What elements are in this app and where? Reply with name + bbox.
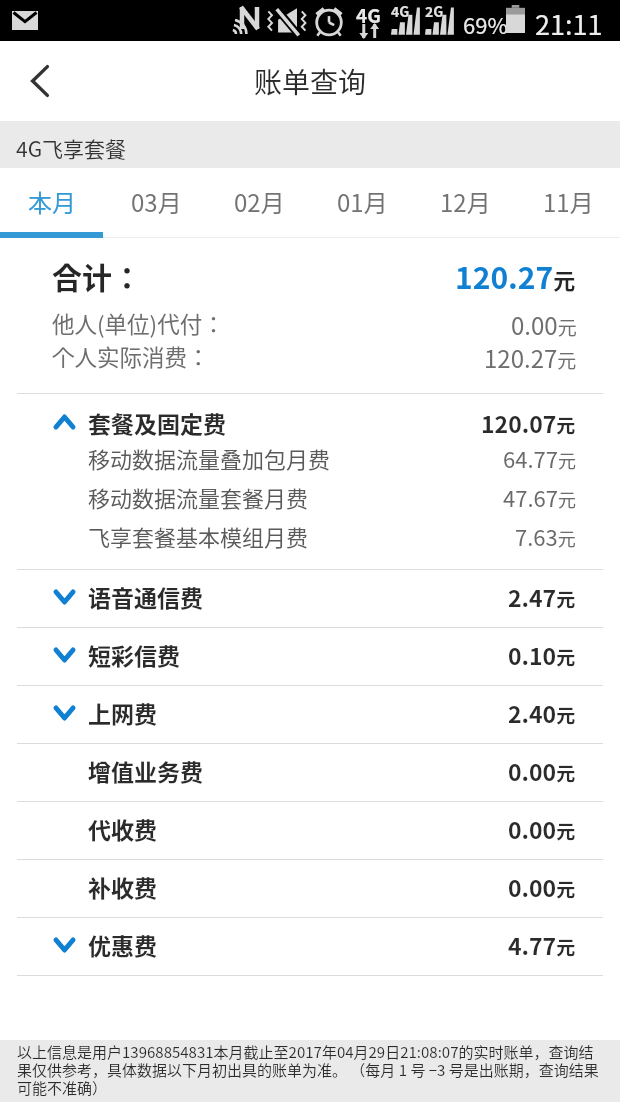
staticText: 短彩信费 xyxy=(88,638,180,671)
button[interactable]: 上网费 xyxy=(17,686,576,743)
staticText: 64.77元 xyxy=(503,442,576,474)
staticText: 飞享套餐基本模组月费 xyxy=(88,520,309,552)
button[interactable]: 语音通信费 xyxy=(17,570,576,627)
staticText: 合计： xyxy=(52,254,142,297)
staticText: 11月 xyxy=(543,184,594,219)
staticText: 0.10元 xyxy=(508,638,576,671)
button[interactable]: 短彩信费 xyxy=(17,628,576,685)
button[interactable]: 代收费 xyxy=(17,802,576,859)
staticText: 7.63元 xyxy=(515,520,576,552)
staticText: 上网费 xyxy=(88,696,157,729)
button[interactable]: 优惠费 xyxy=(17,918,576,975)
staticText: 他人(单位)代付： xyxy=(52,307,225,340)
staticText: 账单查询 xyxy=(254,61,367,102)
button[interactable]: 01月 xyxy=(311,168,414,238)
staticText: 2.40元 xyxy=(508,696,576,729)
staticText: 0.00元 xyxy=(511,307,577,340)
staticText: 2G xyxy=(425,1,444,21)
staticText: 47.67元 xyxy=(503,481,576,513)
button[interactable]: 套餐及固定费 xyxy=(17,394,576,440)
staticText: 4.77元 xyxy=(508,928,576,961)
button[interactable]: 03月 xyxy=(104,168,208,238)
staticText: 本月 xyxy=(28,184,76,219)
staticText: 优惠费 xyxy=(88,928,157,961)
staticText: 12月 xyxy=(440,184,491,219)
staticText: 0.00元 xyxy=(508,754,576,787)
staticText: 增值业务费 xyxy=(88,754,203,787)
staticText: 0.00元 xyxy=(508,870,576,903)
button[interactable]: Back xyxy=(0,41,78,121)
staticText: 移动数据流量叠加包月费 xyxy=(88,442,331,474)
staticText: 4G飞享套餐 xyxy=(16,133,127,163)
button[interactable]: 补收费 xyxy=(17,860,576,917)
staticText: 4G xyxy=(391,1,410,21)
staticText: 套餐及固定费 xyxy=(88,406,226,439)
button[interactable]: 02月 xyxy=(208,168,311,238)
button[interactable]: 12月 xyxy=(414,168,517,238)
staticText: 120.27元 xyxy=(455,254,576,297)
staticText: 21:11 xyxy=(535,4,603,43)
staticText: 120.07元 xyxy=(481,406,576,439)
staticText: 03月 xyxy=(131,184,182,219)
staticText: 补收费 xyxy=(88,870,157,903)
staticText: 0.00元 xyxy=(508,812,576,845)
staticText: 2.47元 xyxy=(508,580,576,613)
button[interactable]: 11月 xyxy=(517,168,620,238)
staticText: 个人实际消费： xyxy=(52,340,210,373)
staticText: 代收费 xyxy=(88,812,157,845)
staticText: 120.27元 xyxy=(484,340,577,373)
staticText: 以上信息是用户13968854831本月截止至2017年04月29日21:08:… xyxy=(17,1041,605,1099)
staticText: 69% xyxy=(463,8,508,40)
button[interactable]: 本月 xyxy=(0,168,104,238)
staticText: 语音通信费 xyxy=(88,580,203,613)
staticText: 4G xyxy=(356,1,381,29)
staticText: 移动数据流量套餐月费 xyxy=(88,481,309,513)
staticText: 01月 xyxy=(337,184,388,219)
button[interactable]: 增值业务费 xyxy=(17,744,576,801)
staticText: 02月 xyxy=(234,184,285,219)
